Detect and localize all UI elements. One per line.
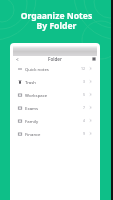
staticText: Exams [25, 105, 83, 111]
staticText: 3 [83, 79, 86, 84]
button[interactable]: Finance [13, 127, 97, 140]
staticText: Trash [25, 79, 83, 85]
button[interactable]: Settings [91, 56, 97, 62]
button[interactable]: Back [13, 56, 22, 62]
button[interactable]: Workspace [13, 88, 97, 101]
staticText: 9 [83, 131, 86, 136]
staticText: Workspace [25, 92, 83, 98]
button[interactable]: Family [13, 114, 97, 127]
staticText: 5 [83, 92, 86, 97]
staticText: 7 [83, 105, 86, 110]
staticText: Finance [25, 131, 83, 137]
staticText: 4 [83, 118, 86, 123]
button[interactable]: Exams [13, 101, 97, 114]
button[interactable]: Quick notes [13, 62, 97, 75]
staticText: Folder [48, 56, 62, 62]
staticText: Orgaanize Notes By Folder [0, 10, 113, 32]
button[interactable]: Trash [13, 75, 97, 88]
staticText: Family [25, 118, 83, 124]
staticText: 12 [81, 66, 86, 71]
staticText: Quick notes [25, 66, 81, 72]
